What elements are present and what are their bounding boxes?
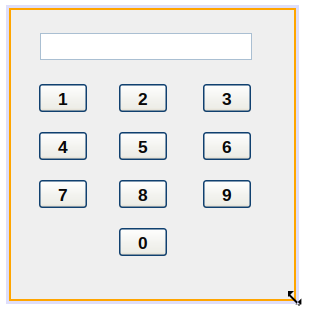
button[interactable]: 7 [39,180,87,208]
button[interactable]: 9 [203,180,251,208]
staticText: 7 [58,185,68,205]
staticText: 0 [138,233,148,253]
button[interactable]: 8 [119,180,167,208]
staticText: 2 [138,89,148,109]
button[interactable]: 0 [119,228,167,256]
button[interactable]: 1 [39,84,87,112]
button[interactable]: 5 [119,132,167,160]
staticText: 9 [222,185,232,205]
staticText: 3 [222,89,232,109]
button[interactable]: 4 [39,132,87,160]
button[interactable]: 2 [119,84,167,112]
button[interactable]: 3 [203,84,251,112]
staticText: 1 [58,89,68,109]
staticText: 4 [58,137,68,157]
button[interactable]: 6 [203,132,251,160]
staticText: 6 [222,137,232,157]
staticText: 8 [138,185,148,205]
staticText: 5 [138,137,148,157]
